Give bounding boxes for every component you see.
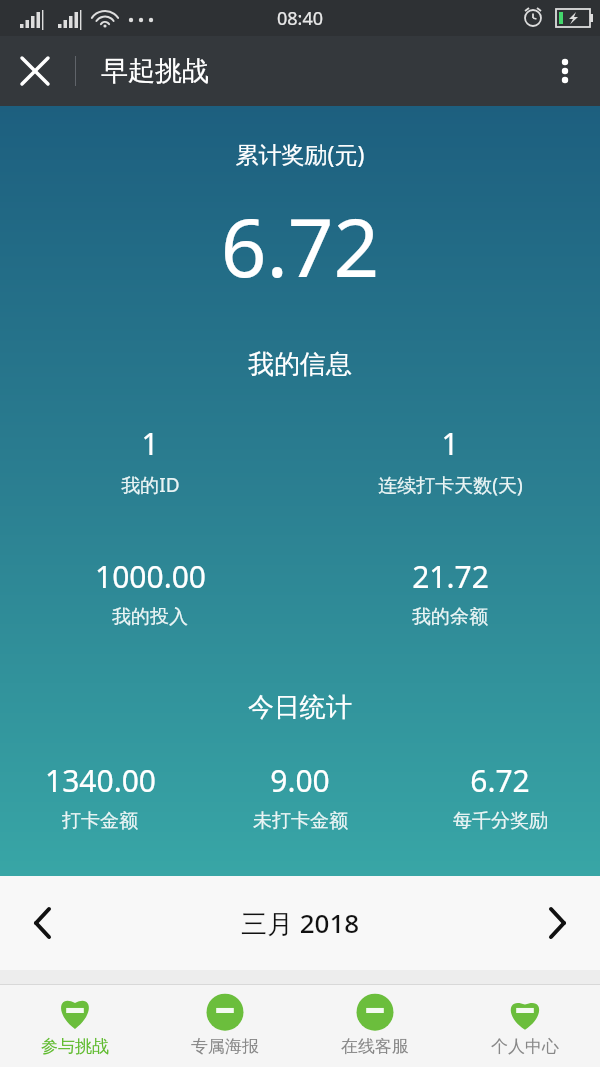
- staticText: 个人中心: [491, 1036, 559, 1057]
- staticText: 我的余额: [412, 605, 488, 629]
- staticText: 我的信息: [0, 348, 600, 381]
- staticText: 连续打卡天数(天): [378, 472, 523, 498]
- button[interactable]: 在线客服: [300, 985, 450, 1067]
- staticText: 6.72: [470, 760, 530, 801]
- staticText: 6.72: [0, 191, 600, 300]
- staticText: 1000.00: [95, 556, 206, 597]
- button[interactable]: 1000.00: [0, 556, 300, 629]
- button[interactable]: Close: [0, 36, 70, 106]
- button[interactable]: Previous month: [0, 880, 86, 966]
- staticText: 1: [441, 423, 459, 464]
- button[interactable]: 6.72: [400, 760, 600, 833]
- staticText: 我的投入: [112, 605, 188, 629]
- button[interactable]: Next month: [514, 880, 600, 966]
- staticText: 今日统计: [0, 691, 600, 724]
- button[interactable]: 个人中心: [450, 985, 600, 1067]
- staticText: 在线客服: [341, 1036, 409, 1057]
- staticText: 专属海报: [191, 1036, 259, 1057]
- staticText: 累计奖励(元): [0, 138, 600, 169]
- button[interactable]: 9.00: [200, 760, 400, 833]
- button[interactable]: 专属海报: [150, 985, 300, 1067]
- button[interactable]: More options: [530, 36, 600, 106]
- staticText: 参与挑战: [41, 1036, 109, 1057]
- button[interactable]: 1: [0, 423, 300, 498]
- staticText: 三月 2018: [86, 905, 514, 941]
- staticText: 我的ID: [121, 472, 180, 498]
- staticText: 未打卡金额: [253, 809, 348, 833]
- staticText: 打卡金额: [62, 809, 138, 833]
- staticText: 1340.00: [45, 760, 156, 801]
- button[interactable]: 21.72: [300, 556, 600, 629]
- staticText: 每千分奖励: [453, 809, 548, 833]
- staticText: 1: [141, 423, 159, 464]
- button[interactable]: 1: [300, 423, 600, 498]
- button[interactable]: 1340.00: [0, 760, 200, 833]
- staticText: 早起挑战: [101, 54, 209, 88]
- staticText: 9.00: [270, 760, 330, 801]
- staticText: 21.72: [412, 556, 489, 597]
- button[interactable]: 参与挑战: [0, 985, 150, 1067]
- staticText: 08:40: [277, 6, 324, 31]
